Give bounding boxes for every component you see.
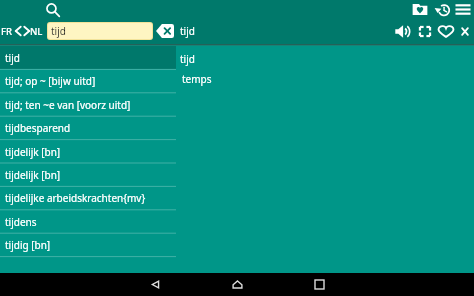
staticText: FR: [1, 25, 13, 38]
button[interactable]: tijd: [0, 46, 176, 69]
button[interactable]: Home: [196, 273, 278, 296]
button[interactable]: tijd; op ~ [bijw uitd]: [0, 69, 176, 92]
staticText: tijdens: [5, 215, 37, 229]
staticText: tijdelijk [bn]: [5, 168, 61, 182]
button[interactable]: tijdens: [0, 210, 176, 233]
staticText: tijd: [5, 51, 20, 65]
button[interactable]: Pronounce: [391, 21, 414, 42]
button[interactable]: Menu: [451, 0, 474, 19]
button[interactable]: History: [432, 0, 453, 21]
staticText: tijd: [180, 52, 195, 66]
button[interactable]: tijdelijke arbeidskrachten{mv}: [0, 186, 176, 209]
staticText: tijdelijke arbeidskrachten{mv}: [5, 191, 146, 205]
button[interactable]: Back: [114, 273, 196, 296]
staticText: tijdig [bn]: [5, 238, 51, 252]
staticText: tijd; op ~ [bijw uitd]: [5, 74, 96, 88]
button[interactable]: Recent apps: [278, 273, 360, 296]
button[interactable]: Favourite: [434, 20, 458, 43]
button[interactable]: tijd; ten ~e van [voorz uitd]: [0, 93, 176, 116]
staticText: tijd: [180, 24, 195, 38]
button[interactable]: tijdbesparend: [0, 116, 176, 139]
staticText: tijd: [51, 24, 66, 38]
button[interactable]: tijdelijk [bn]: [0, 163, 176, 186]
button[interactable]: Fullscreen: [414, 21, 436, 42]
button[interactable]: Close: [457, 23, 473, 40]
button[interactable]: Search: [43, 0, 61, 18]
staticText: tijd; ten ~e van [voorz uitd]: [5, 98, 131, 112]
button[interactable]: Clear text: [156, 24, 174, 38]
button[interactable]: Favourites folder: [408, 0, 432, 20]
button[interactable]: tijdig [bn]: [0, 233, 176, 256]
staticText: tijdelijk [bn]: [5, 145, 61, 159]
staticText: NL: [30, 25, 43, 38]
button[interactable]: tijd: [47, 22, 153, 40]
button[interactable]: FR: [1, 22, 43, 40]
staticText: tijdbesparend: [5, 121, 71, 135]
staticText: temps: [182, 72, 212, 86]
button[interactable]: tijdelijk [bn]: [0, 140, 176, 163]
